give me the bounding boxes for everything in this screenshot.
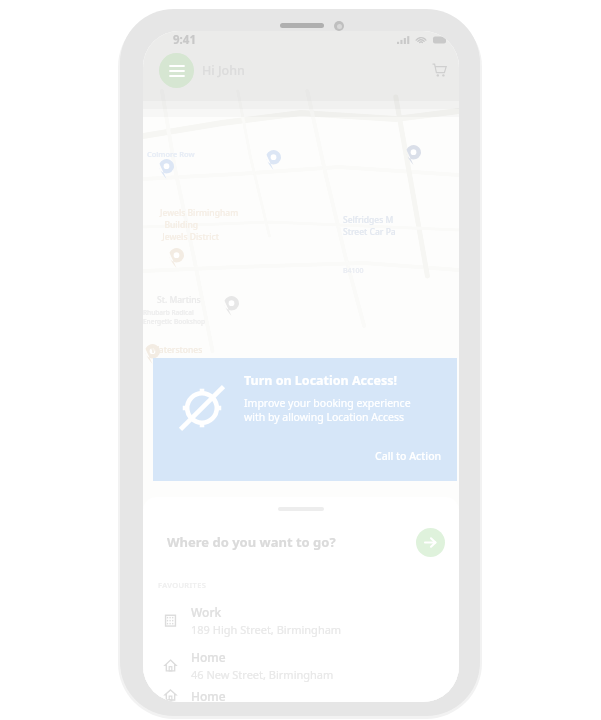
staticText: Where do you want to go?	[167, 533, 336, 551]
staticText: Improve your booking experience with by …	[244, 396, 411, 424]
staticText: Turn on Location Access!	[244, 372, 398, 389]
staticText: 46 New Street, Birmingham	[191, 667, 334, 682]
staticText: Home	[191, 649, 226, 665]
button[interactable]: Call to Action	[375, 449, 442, 463]
staticText: 189 High Street, Birmingham	[191, 622, 342, 637]
button[interactable]: Open menu	[159, 53, 194, 88]
button[interactable]: Home	[164, 643, 439, 688]
button[interactable]: Location off	[153, 358, 457, 481]
button[interactable]: Where do you want to go?	[167, 526, 445, 558]
staticText: 9:41	[173, 32, 196, 48]
staticText: Hi John	[202, 62, 245, 79]
button[interactable]: Work	[164, 598, 439, 643]
staticText: Rhubarb Radical Energetic Bookshop	[143, 308, 206, 326]
staticText: Colmore Row	[147, 149, 195, 159]
staticText: Waterstones	[151, 344, 203, 356]
button[interactable]: Home	[164, 688, 439, 702]
button[interactable]: Shopping cart	[426, 57, 452, 83]
other: Location off	[176, 382, 228, 434]
staticText: FAVOURITES	[158, 580, 207, 590]
staticText: Home	[191, 688, 226, 702]
staticText: Work	[191, 604, 222, 620]
staticText: Selfridges M Street Car Pa	[343, 214, 396, 238]
staticText: Jewels Birmingham Building Jewels Distri…	[160, 207, 239, 243]
staticText: St. Martins	[157, 294, 201, 306]
staticText: B4100	[343, 266, 364, 276]
